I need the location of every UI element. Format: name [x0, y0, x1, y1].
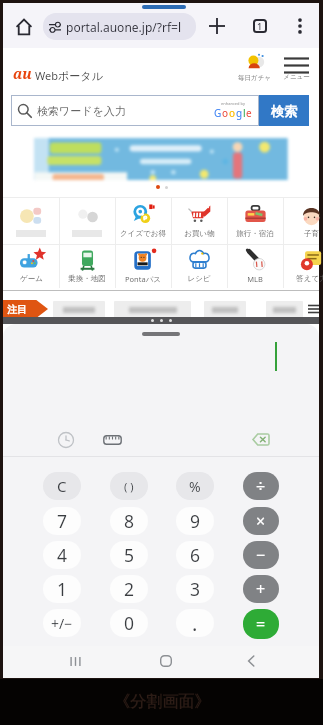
staticText: −	[256, 544, 266, 566]
button[interactable]: 1	[43, 575, 81, 603]
button[interactable]: +/−	[43, 609, 81, 637]
button[interactable]	[3, 197, 59, 244]
staticText: 4	[57, 543, 68, 567]
button[interactable]	[266, 301, 303, 318]
button[interactable]: Home	[11, 14, 37, 40]
button[interactable]: 答えて力	[283, 244, 323, 288]
button[interactable]: 6	[176, 541, 214, 569]
staticText: クイズでお得	[120, 229, 166, 238]
staticText: 3	[190, 577, 201, 601]
staticText: ×	[256, 510, 266, 532]
staticText: ( )	[124, 479, 134, 494]
staticText: %	[189, 477, 201, 496]
staticText: お買い物	[184, 229, 215, 238]
staticText: 9	[190, 509, 201, 533]
button[interactable]: 毎日ガチャ	[236, 54, 273, 82]
button[interactable]: 旅行・宿泊	[227, 197, 283, 244]
staticText: メニュー	[283, 73, 310, 81]
button[interactable]: 乗換・地図	[59, 244, 115, 288]
button[interactable]	[204, 301, 246, 318]
button[interactable]	[59, 197, 115, 244]
button[interactable]: 注目	[3, 300, 48, 318]
staticText: +/−	[51, 614, 73, 633]
button[interactable]: お買い物	[171, 197, 227, 244]
staticText: g	[236, 106, 243, 120]
staticText: MLB	[247, 274, 263, 284]
button[interactable]: %	[176, 472, 214, 500]
button[interactable]: Menu	[277, 56, 315, 81]
button[interactable]: Pontaパス	[115, 244, 171, 288]
button[interactable]: 3	[176, 575, 214, 603]
button[interactable]: =	[243, 609, 279, 639]
staticText: o	[222, 106, 229, 120]
button[interactable]: 0	[110, 609, 148, 637]
staticText: e	[246, 106, 252, 120]
button[interactable]: Recent apps	[63, 649, 87, 673]
staticText: 1	[257, 20, 263, 32]
button[interactable]: History	[55, 429, 76, 450]
button[interactable]: List menu	[308, 304, 319, 314]
button[interactable]: Back	[239, 649, 263, 673]
button[interactable]: Backspace	[251, 432, 271, 447]
staticText: 5	[124, 543, 135, 567]
button[interactable]: 7	[43, 507, 81, 535]
button[interactable]: 9	[176, 507, 214, 535]
staticText: +	[256, 578, 266, 600]
button[interactable]: 検索	[259, 95, 309, 126]
staticText: 1	[57, 577, 68, 601]
button[interactable]: Home	[154, 649, 178, 673]
button[interactable]	[53, 301, 105, 318]
staticText: 旅行・宿泊	[236, 229, 274, 238]
button[interactable]: 子育	[283, 197, 323, 244]
staticText: 子育	[304, 229, 319, 238]
button[interactable]: 2	[110, 575, 148, 603]
staticText: ゲーム	[20, 274, 43, 283]
staticText: 6	[190, 543, 201, 567]
staticText: o	[229, 106, 236, 120]
staticText: au	[13, 64, 32, 83]
staticText: .	[192, 610, 198, 637]
button[interactable]: ( )	[110, 472, 148, 500]
staticText: 乗換・地図	[68, 274, 106, 283]
staticText: G	[214, 106, 222, 120]
button[interactable]: portal.auone.jp/?rf=l	[43, 13, 196, 40]
staticText: enhanced by	[221, 101, 246, 106]
button[interactable]: 8	[110, 507, 148, 535]
button[interactable]: MLB	[227, 244, 283, 288]
button[interactable]: 検索ワードを入力	[11, 95, 259, 126]
staticText: =	[256, 613, 266, 635]
staticText: 答えて力	[296, 274, 323, 283]
button[interactable]	[114, 301, 191, 318]
button[interactable]: 4	[43, 541, 81, 569]
button[interactable]: レシピ	[171, 244, 227, 288]
button[interactable]: New tab	[205, 14, 229, 38]
staticText: 注目	[7, 303, 27, 316]
staticText: C	[57, 476, 67, 496]
staticText: 0	[124, 611, 135, 635]
staticText: 毎日ガチャ	[238, 74, 271, 82]
staticText: 7	[57, 509, 68, 533]
staticText: ÷	[256, 475, 266, 497]
button[interactable]: Unit converter	[101, 432, 124, 447]
staticText: 《分割画面》	[114, 692, 210, 712]
staticText: Pontaパス	[125, 274, 161, 284]
button[interactable]: +	[243, 575, 279, 603]
button[interactable]: Tabs	[248, 14, 272, 38]
button[interactable]: More options	[288, 14, 312, 38]
button[interactable]: クイズでお得	[115, 197, 171, 244]
staticText: 検索	[271, 103, 297, 119]
button[interactable]: ×	[243, 507, 279, 535]
button[interactable]: ゲーム	[3, 244, 59, 288]
button[interactable]: −	[243, 541, 279, 569]
staticText: Webポータル	[35, 68, 103, 83]
staticText: 2	[124, 577, 135, 601]
button[interactable]: 5	[110, 541, 148, 569]
staticText: portal.auone.jp/?rf=l	[66, 19, 181, 35]
staticText: l	[243, 106, 246, 120]
button[interactable]: C	[43, 472, 81, 500]
button[interactable]: .	[176, 609, 214, 637]
staticText: 8	[124, 509, 135, 533]
staticText: レシピ	[187, 274, 211, 283]
staticText: 検索ワードを入力	[37, 104, 126, 118]
button[interactable]: ÷	[243, 472, 279, 500]
